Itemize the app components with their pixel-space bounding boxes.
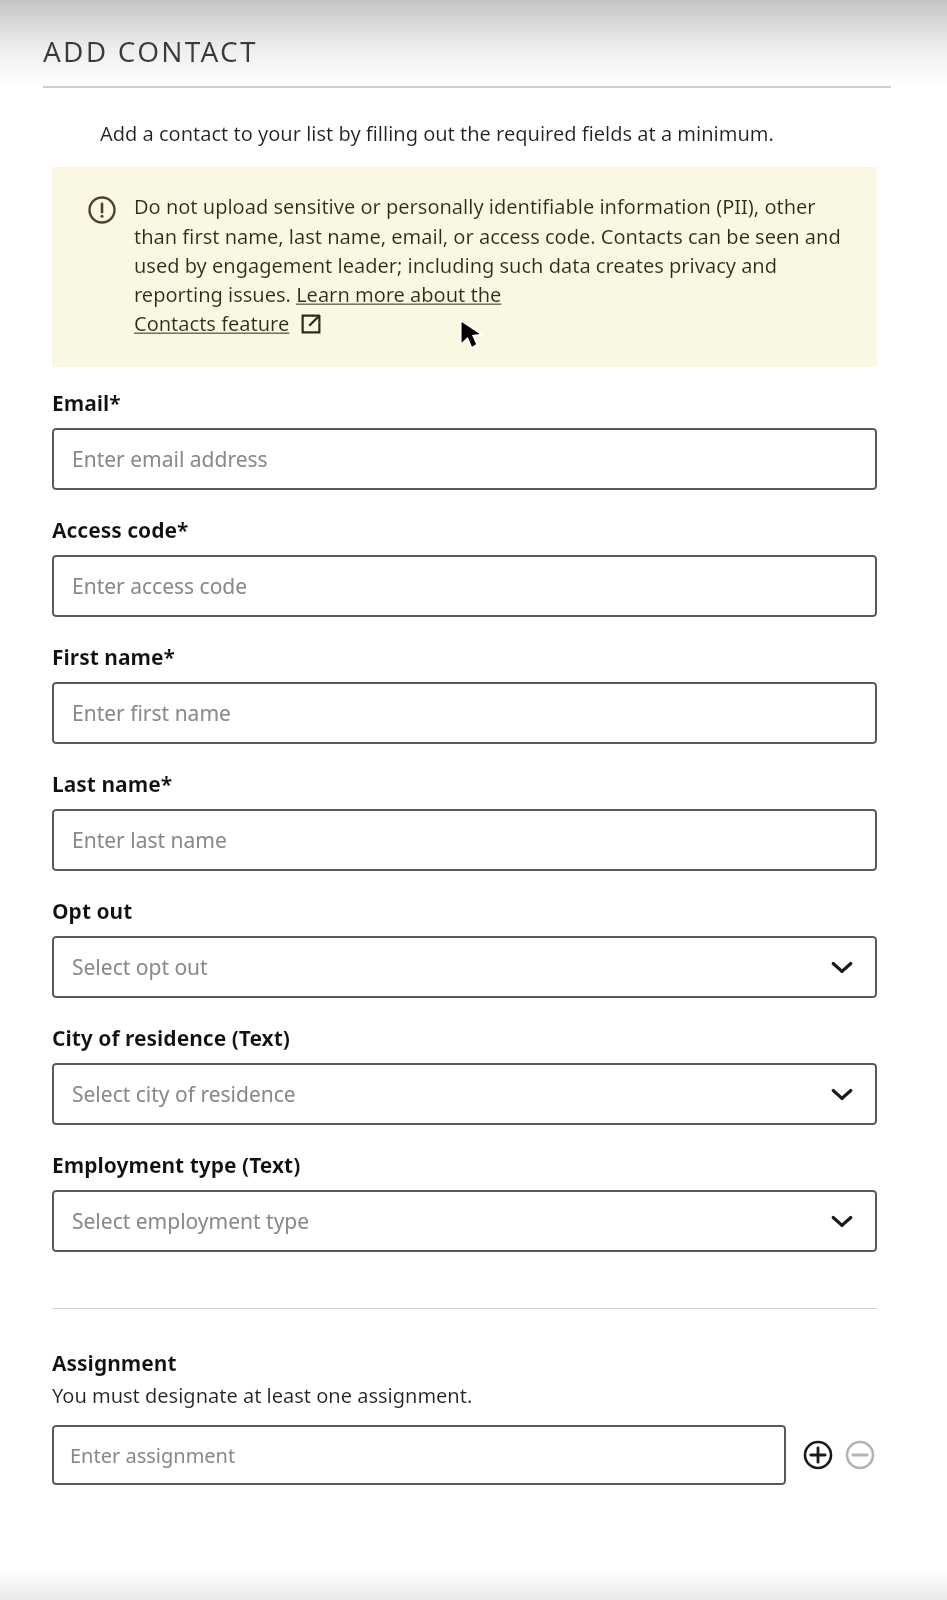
staticText: Enter first name (72, 699, 231, 728)
staticText: Access code* (52, 516, 189, 545)
button[interactable]: Enter last name (52, 809, 877, 871)
other: Open City of residence (Text) options (831, 1083, 853, 1105)
button[interactable]: Remove assignment (842, 1437, 878, 1473)
staticText: Select employment type (72, 1207, 310, 1236)
staticText: Email* (52, 389, 121, 418)
button[interactable]: Select employment type (52, 1190, 877, 1252)
staticText: Enter access code (72, 572, 248, 601)
staticText: First name* (52, 643, 175, 672)
staticText: Opt out (52, 897, 133, 926)
button[interactable]: Select city of residence (52, 1063, 877, 1125)
staticText: Do not upload sensitive or personally id… (134, 193, 853, 308)
button[interactable]: Add assignment (800, 1437, 836, 1473)
button[interactable]: Select opt out (52, 936, 877, 998)
staticText: Select opt out (72, 953, 208, 982)
button[interactable]: Contacts feature (134, 310, 290, 337)
staticText: Assignment (52, 1349, 177, 1378)
staticText: Enter email address (72, 445, 268, 474)
button[interactable]: Enter access code (52, 555, 877, 617)
staticText: Select city of residence (72, 1080, 296, 1109)
button[interactable]: Enter email address (52, 428, 877, 490)
button[interactable]: Enter first name (52, 682, 877, 744)
staticText: ADD CONTACT (43, 32, 258, 70)
button[interactable]: Do not upload sensitive or personally id… (52, 167, 877, 367)
staticText: Enter last name (72, 826, 227, 855)
staticText: You must designate at least one assignme… (52, 1382, 473, 1409)
staticText: Enter assignment (70, 1442, 236, 1469)
staticText: Employment type (Text) (52, 1151, 301, 1180)
other: Open Employment type (Text) options (831, 1210, 853, 1232)
button[interactable]: Enter assignment (52, 1425, 786, 1485)
staticText: Last name* (52, 770, 173, 799)
button[interactable]: Opens in new window (300, 313, 322, 335)
staticText: Add a contact to your list by filling ou… (100, 120, 774, 147)
other: Open Opt out options (831, 956, 853, 978)
staticText: City of residence (Text) (52, 1024, 290, 1053)
